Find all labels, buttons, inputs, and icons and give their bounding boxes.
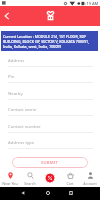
button[interactable]: Account [80, 168, 100, 187]
button[interactable]: Near You [0, 168, 20, 187]
button[interactable]: Back [1, 10, 13, 22]
staticText: Search [24, 181, 36, 186]
button[interactable]: Nearby [0, 87, 100, 103]
button[interactable]: Contact number [0, 120, 100, 136]
button[interactable]: Contact name [0, 103, 100, 119]
staticText: Contact number [8, 123, 41, 129]
button[interactable]: Recents [65, 187, 77, 199]
button[interactable]: Address [0, 54, 100, 70]
button[interactable]: Offers [40, 168, 60, 187]
button[interactable]: Search [20, 168, 40, 187]
button[interactable]: SUBMIT [12, 157, 88, 168]
button[interactable]: Cart [60, 168, 80, 187]
staticText: Pin [8, 73, 15, 79]
staticText: Nearby [8, 90, 23, 96]
button[interactable]: Address type [0, 136, 100, 152]
button[interactable]: Home [42, 187, 54, 199]
staticText: SUBMIT [41, 160, 59, 166]
staticText: 3:19 AM [83, 1, 99, 6]
button[interactable]: Back [17, 187, 29, 199]
button[interactable]: Current Location : MODULE 214, 1ST FLOOR… [1, 31, 98, 51]
staticText: Address [8, 57, 25, 63]
button[interactable]: Pin [0, 70, 100, 86]
staticText: Cart [66, 181, 74, 186]
staticText: Account [83, 181, 97, 186]
staticText: Contact name [8, 106, 37, 112]
staticText: Current Location : MODULE 214, 1ST FLOOR… [3, 34, 96, 49]
staticText: Address type [8, 139, 35, 145]
staticText: Near You [2, 181, 18, 186]
